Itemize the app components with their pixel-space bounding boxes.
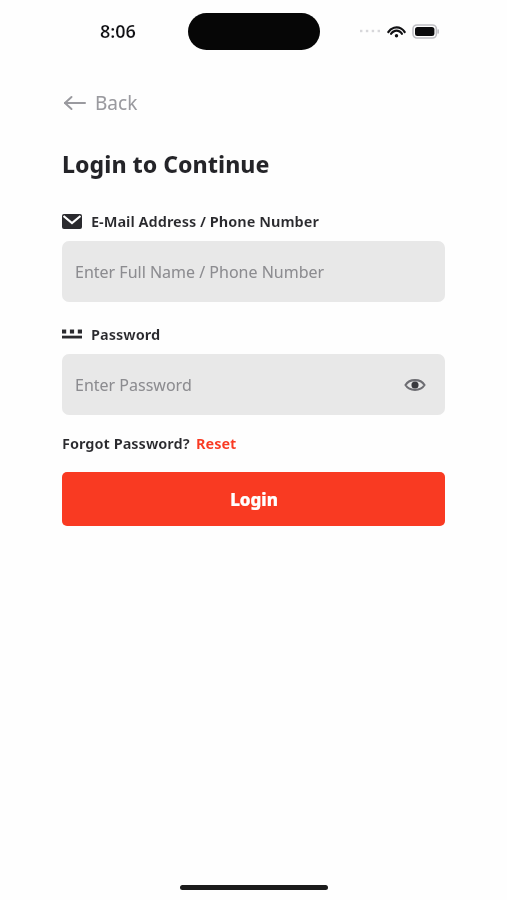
button[interactable]: Enter Password xyxy=(62,354,445,415)
staticText: Enter Password xyxy=(75,374,192,396)
button[interactable]: Show password xyxy=(401,371,429,399)
button[interactable]: Reset xyxy=(196,433,237,453)
staticText: Password xyxy=(91,324,161,344)
staticText: 8:06 xyxy=(100,19,136,44)
staticText: Login to Continue xyxy=(62,148,270,179)
button[interactable]: Login xyxy=(62,472,445,526)
staticText: Back xyxy=(95,90,138,116)
staticText: Forgot Password? xyxy=(62,433,190,453)
staticText: Reset xyxy=(196,433,237,453)
staticText: Login xyxy=(230,488,278,511)
staticText: Enter Full Name / Phone Number xyxy=(75,261,325,283)
staticText: E-Mail Address / Phone Number xyxy=(91,211,319,231)
button[interactable]: Enter Full Name / Phone Number xyxy=(62,241,445,302)
button[interactable]: Back xyxy=(58,84,144,122)
